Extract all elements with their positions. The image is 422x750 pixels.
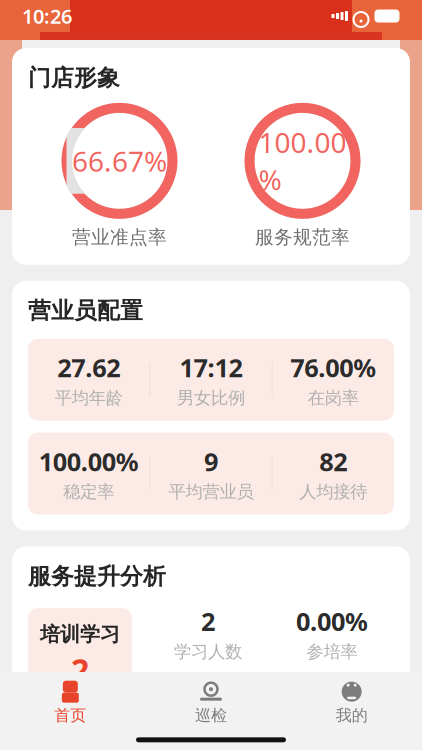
staticText: 学习人数: [174, 641, 242, 662]
staticText: 2: [201, 604, 215, 638]
staticText: 培训次数: [46, 693, 114, 714]
button[interactable]: 我的: [281, 675, 422, 729]
staticText: 门店形象: [28, 64, 120, 92]
staticText: 稳定率: [63, 481, 114, 502]
staticText: 我的: [336, 706, 368, 725]
button[interactable]: 首页: [0, 675, 141, 729]
staticText: 100.00%: [258, 124, 346, 198]
staticText: 男女比例: [177, 387, 245, 409]
staticText: 3.0h: [306, 674, 357, 708]
staticText: 服务提升分析: [28, 562, 166, 590]
staticText: 巡检: [195, 706, 227, 725]
staticText: 66.67%: [72, 142, 167, 179]
staticText: 首页: [54, 706, 86, 725]
staticText: 100.00%: [39, 444, 139, 478]
button[interactable]: 巡检: [141, 675, 281, 729]
staticText: 营业准点率: [72, 226, 167, 249]
staticText: 10:26: [22, 3, 72, 29]
staticText: 9: [204, 444, 218, 478]
staticText: 0.00%: [296, 604, 368, 638]
staticText: 营业员配置: [28, 297, 143, 325]
staticText: 17:12: [179, 351, 242, 384]
staticText: 人均学时: [298, 711, 366, 732]
staticText: 0.00%: [172, 674, 244, 708]
staticText: 合格率: [182, 711, 233, 732]
staticText: 82: [319, 444, 347, 478]
staticText: 培训学习: [40, 622, 120, 647]
staticText: 2: [71, 649, 89, 691]
staticText: 人均接待: [299, 481, 367, 502]
staticText: 27.62: [57, 351, 120, 384]
staticText: 平均年龄: [55, 387, 123, 409]
staticText: 在岗率: [308, 387, 359, 409]
staticText: 参培率: [306, 641, 357, 662]
staticText: 平均营业员: [168, 481, 253, 502]
staticText: 服务规范率: [255, 226, 350, 249]
staticText: 76.00%: [290, 351, 376, 384]
